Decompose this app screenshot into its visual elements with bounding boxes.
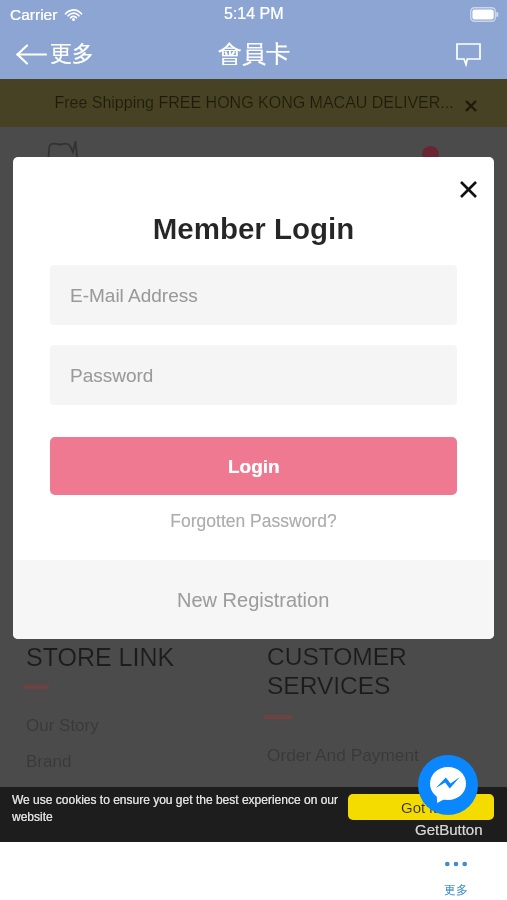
button[interactable]: Got it! [348, 794, 494, 820]
button[interactable]: Brand [26, 752, 72, 771]
button[interactable]: 更多 [12, 34, 98, 74]
staticText: Carrier [10, 6, 58, 23]
staticText: E-Mail Address [70, 285, 198, 306]
button[interactable]: Forgotten Password? [13, 511, 494, 531]
button[interactable]: Order And Payment [267, 745, 419, 764]
staticText: 5:14 PM [224, 5, 284, 23]
button[interactable]: Close [450, 171, 486, 207]
staticText: STORE LINK [26, 643, 175, 671]
button[interactable]: New Registration [13, 560, 494, 639]
staticText: New Registration [177, 589, 330, 611]
button[interactable]: 更多 [406, 842, 506, 900]
staticText: Free Shipping FREE HONG KONG MACAU DELIV… [54, 94, 454, 112]
button[interactable]: Messenger chat [418, 755, 478, 815]
staticText: Got it! [401, 799, 442, 816]
button[interactable]: Close banner [458, 93, 484, 119]
staticText: 會員卡 [218, 39, 290, 69]
button[interactable]: Our Story [26, 716, 99, 735]
staticText: CUSTOMER SERVICES [267, 643, 407, 699]
button[interactable]: Password [50, 345, 457, 405]
button[interactable]: E-Mail Address [50, 265, 457, 325]
staticText: Password [70, 365, 154, 386]
staticText: Login [228, 456, 280, 477]
staticText: 更多 [444, 882, 468, 897]
button[interactable]: Chat [446, 32, 490, 76]
staticText: 更多 [50, 40, 94, 68]
button[interactable]: Login [50, 437, 457, 495]
staticText: GetButton [415, 821, 483, 838]
staticText: We use cookies to ensure you get the bes… [12, 793, 347, 824]
staticText: Member Login [13, 212, 494, 245]
